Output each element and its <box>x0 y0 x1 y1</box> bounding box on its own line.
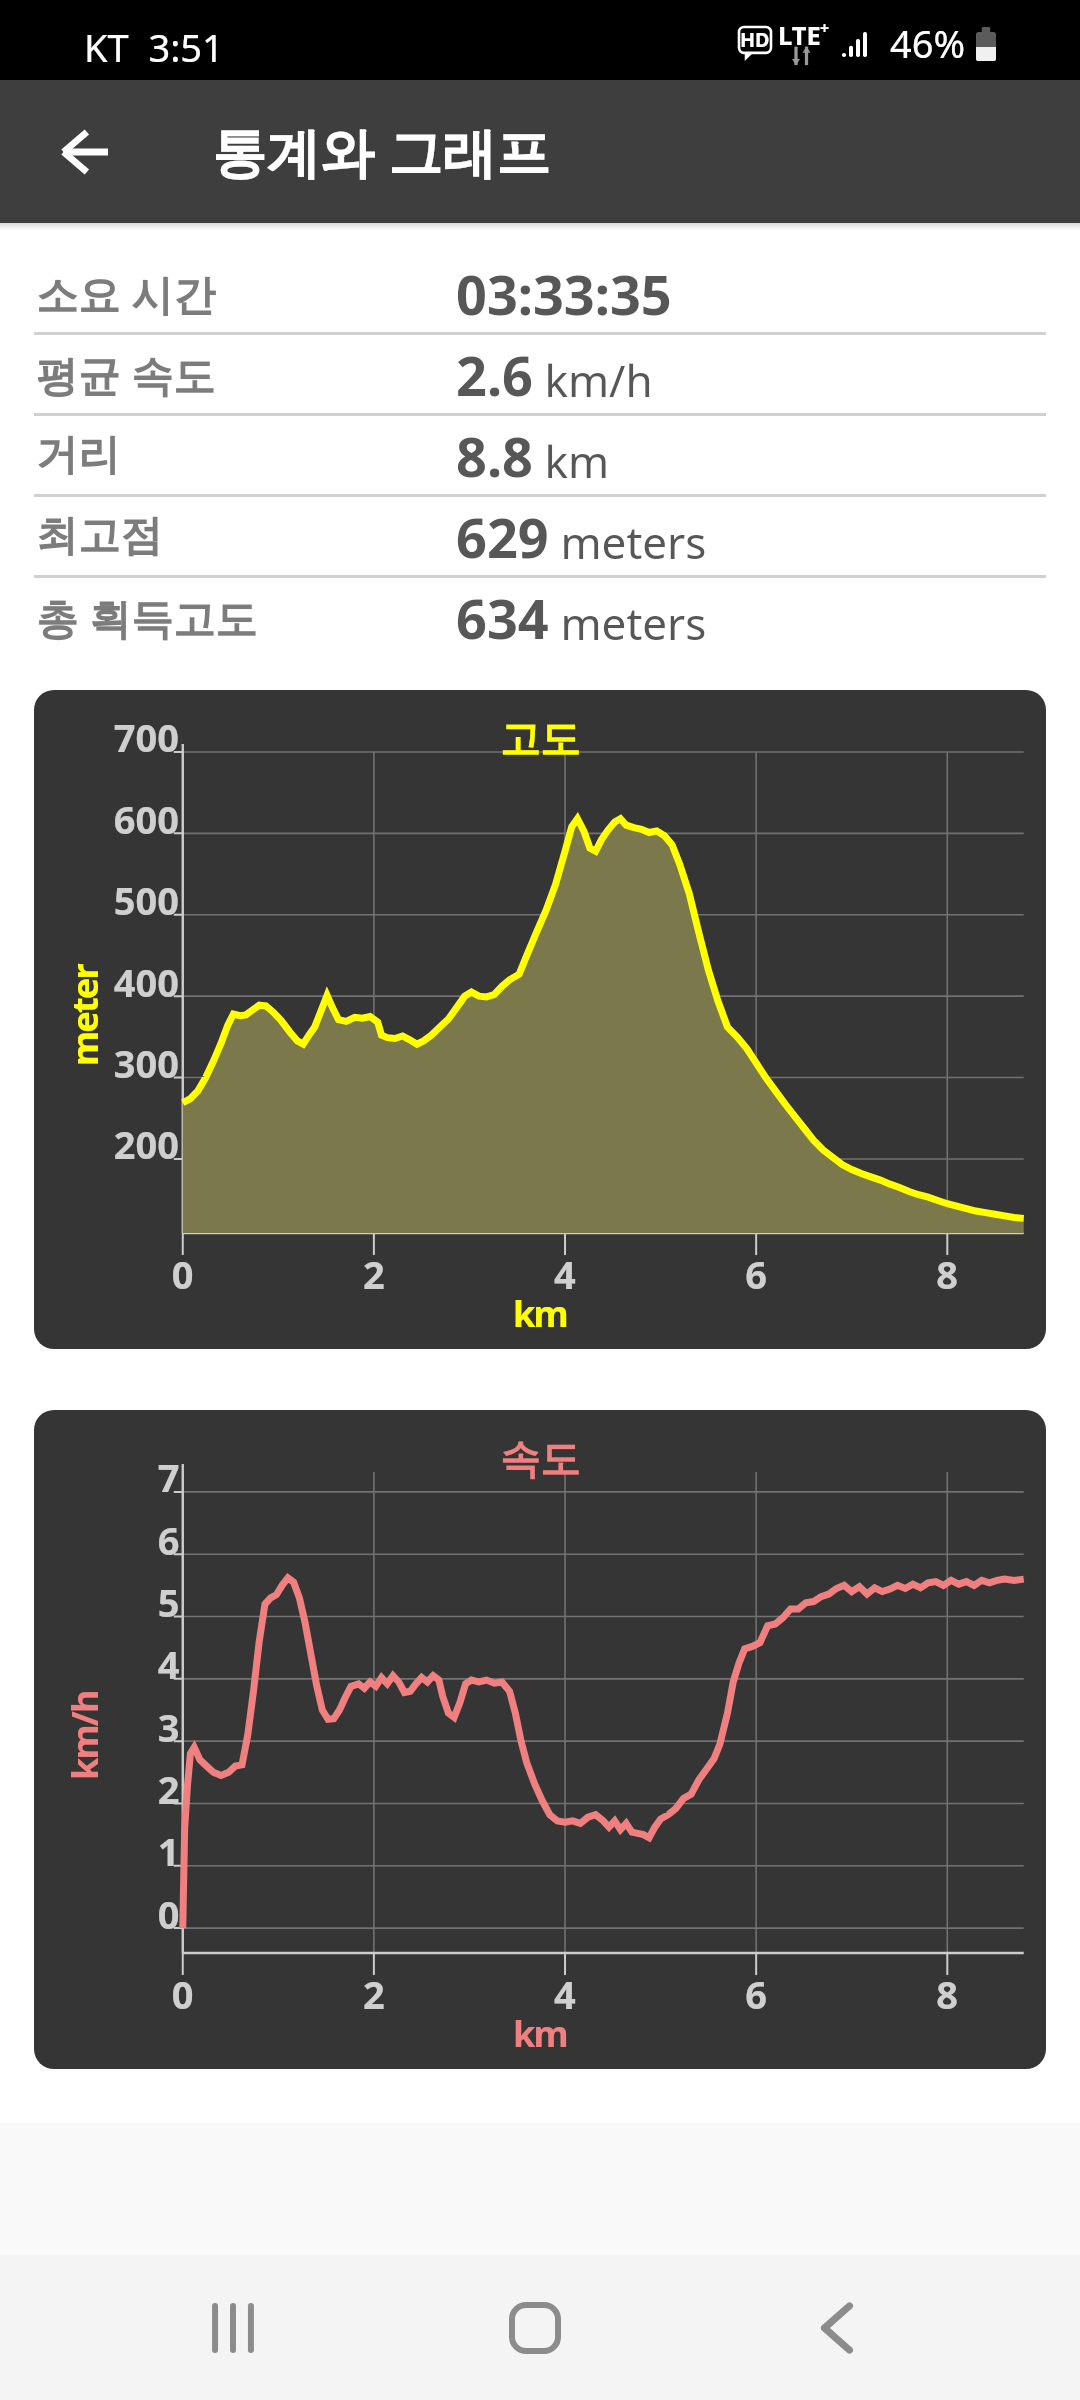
button[interactable] <box>34 690 1046 1349</box>
staticText: meters <box>549 593 707 653</box>
staticText: meters <box>549 512 707 572</box>
button[interactable]: Home <box>460 2255 610 2400</box>
staticText: 634 <box>456 581 549 655</box>
button[interactable]: Back <box>12 80 156 223</box>
button[interactable]: Back <box>762 2255 912 2400</box>
staticText: km/h <box>533 350 653 410</box>
staticText: KT 3:51 <box>84 21 224 73</box>
staticText: km <box>533 431 610 491</box>
staticText: 최고점 <box>36 510 162 563</box>
staticText: 총 획득고도 <box>36 589 257 646</box>
staticText: 평균 속도 <box>36 346 215 403</box>
staticText: 통계와 그래프 <box>212 114 551 188</box>
staticText: 03:33:35 <box>456 257 672 331</box>
staticText: 소요 시간 <box>36 265 215 322</box>
button[interactable]: Recent apps <box>158 2255 308 2400</box>
staticText: 8.8 <box>456 419 533 493</box>
staticText: 629 <box>456 500 549 574</box>
staticText: 거리 <box>36 429 120 482</box>
staticText: 46% <box>890 17 966 69</box>
button[interactable] <box>34 1410 1046 2069</box>
staticText: 2.6 <box>456 338 533 412</box>
